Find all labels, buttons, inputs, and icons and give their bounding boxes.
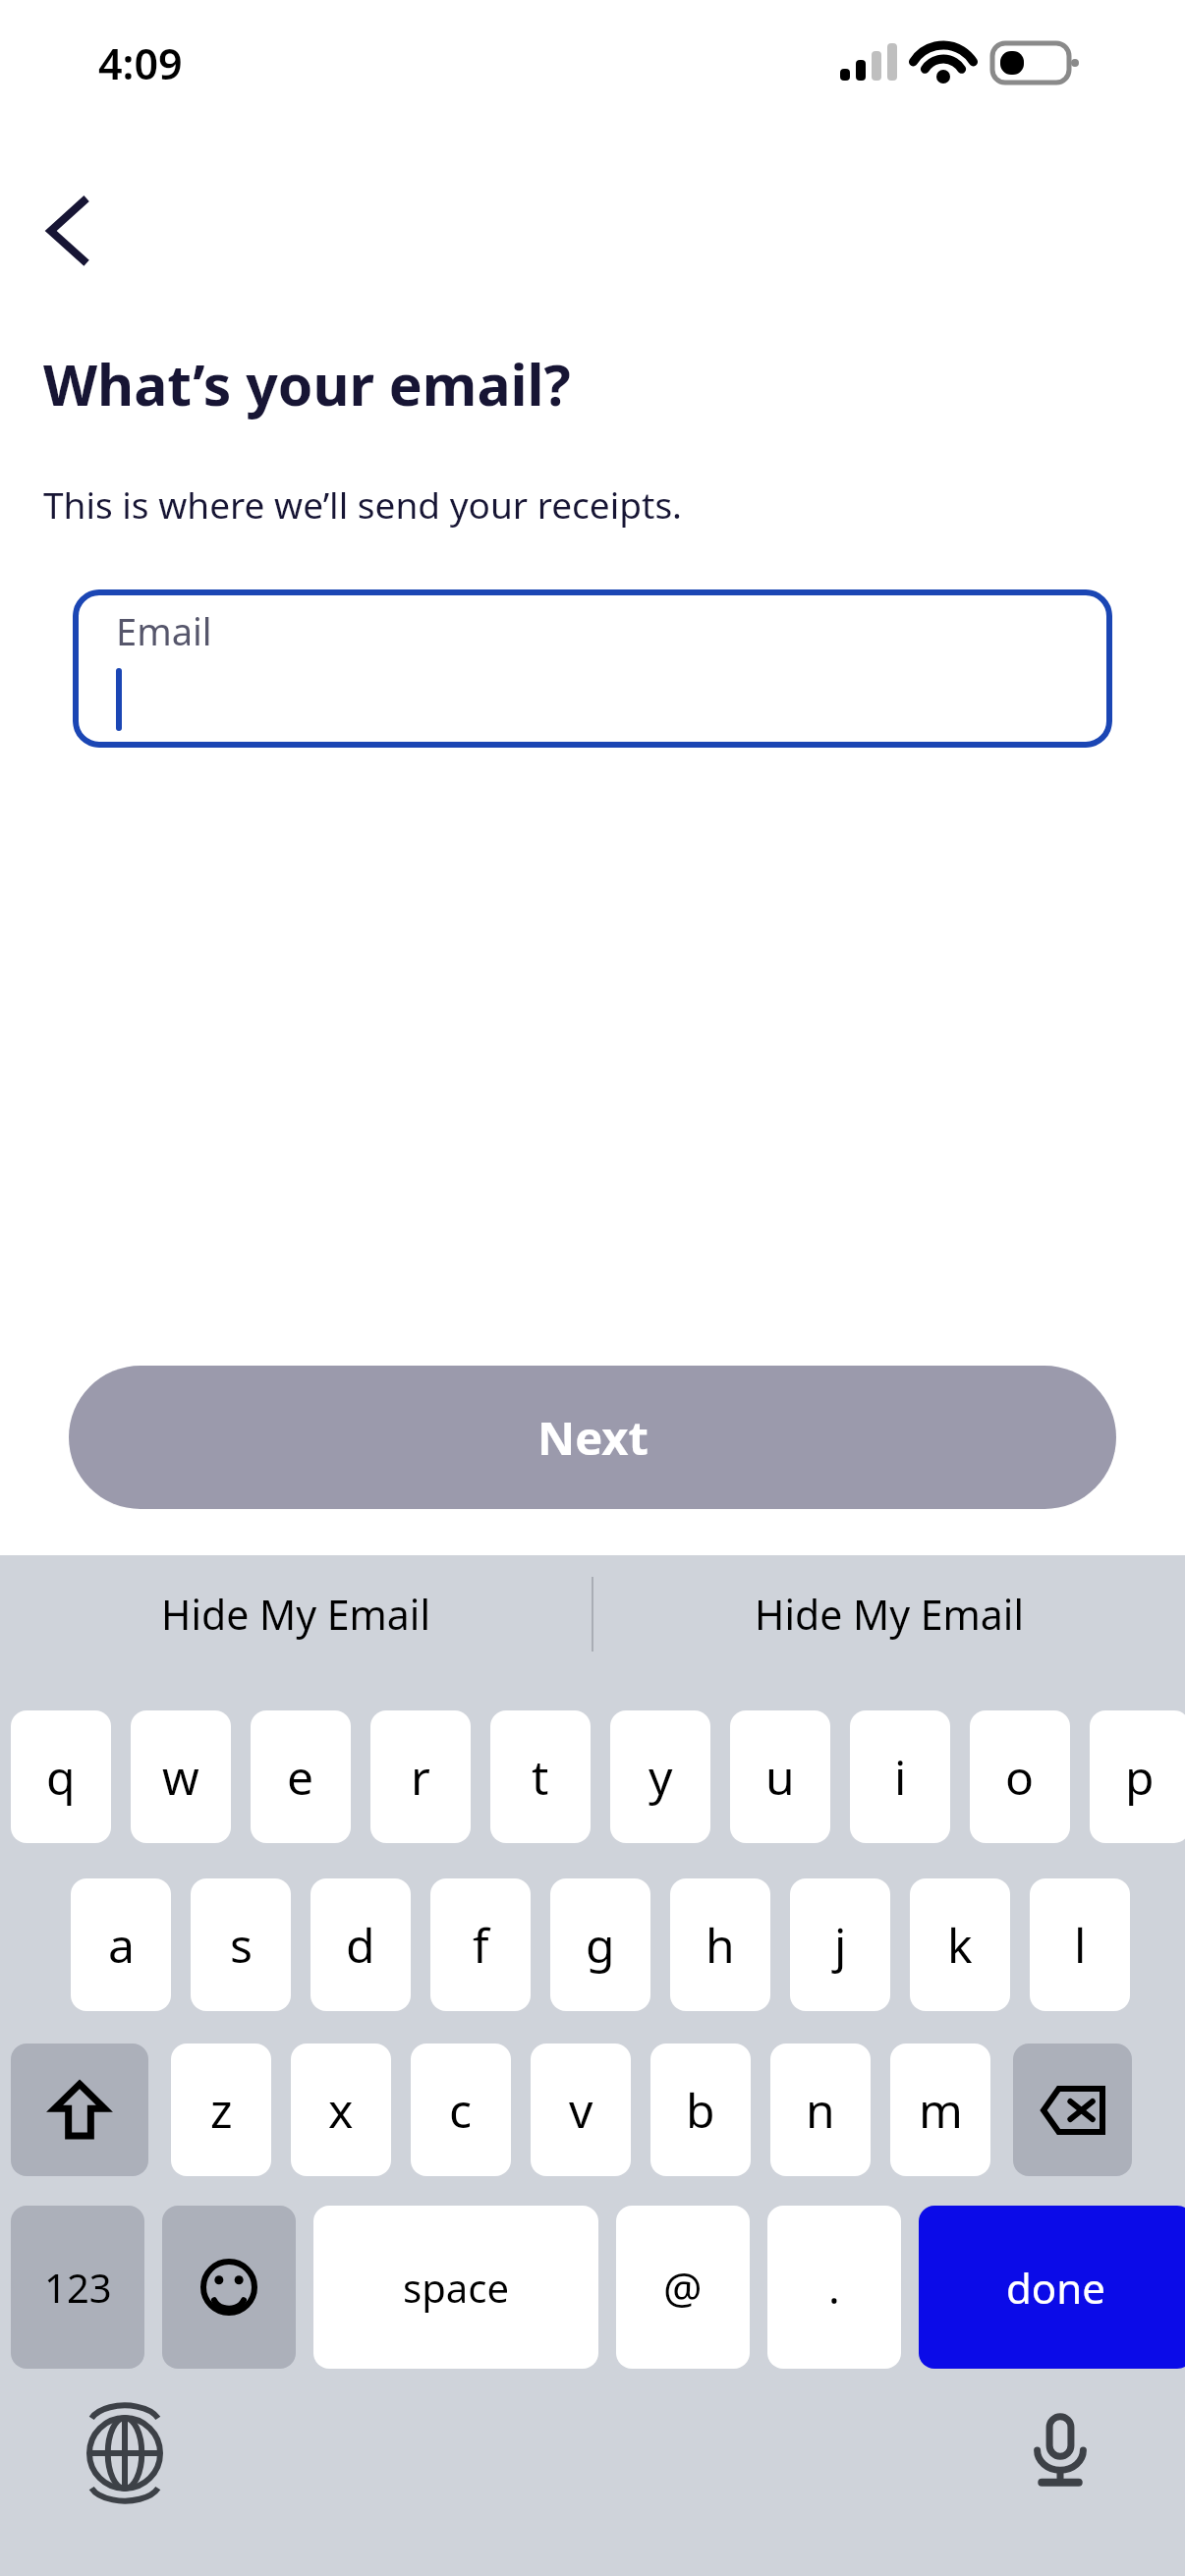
staticText: e [287, 1745, 314, 1809]
button[interactable]: Hide My Email [593, 1555, 1185, 1673]
staticText: y [649, 1745, 673, 1809]
staticText: Hide My Email [755, 1587, 1025, 1642]
button[interactable]: f [430, 1878, 531, 2011]
button[interactable]: a [71, 1878, 171, 2011]
button[interactable]: Shift [11, 2044, 148, 2176]
staticText: v [569, 2078, 593, 2142]
staticText: d [346, 1913, 375, 1977]
staticText: k [947, 1913, 973, 1977]
staticText: Email [116, 605, 212, 656]
button[interactable]: m [890, 2044, 990, 2176]
button[interactable]: d [310, 1878, 411, 2011]
staticText: t [532, 1745, 549, 1809]
staticText: r [411, 1745, 430, 1809]
button[interactable]: . [767, 2206, 901, 2369]
button[interactable]: Backspace [1013, 2044, 1132, 2176]
staticText: j [834, 1913, 847, 1977]
staticText: c [449, 2078, 473, 2142]
button[interactable]: o [970, 1710, 1070, 1843]
staticText: a [108, 1913, 135, 1977]
button[interactable]: 123 [11, 2206, 144, 2369]
staticText: This is where we’ll send your receipts. [43, 479, 683, 529]
staticText: h [705, 1913, 735, 1977]
button[interactable]: l [1030, 1878, 1130, 2011]
staticText: l [1074, 1913, 1087, 1977]
button[interactable]: n [770, 2044, 871, 2176]
staticText: Next [537, 1406, 649, 1469]
button[interactable]: q [11, 1710, 111, 1843]
button[interactable]: j [790, 1878, 890, 2011]
staticText: s [230, 1913, 253, 1977]
staticText: . [828, 2258, 840, 2317]
button[interactable]: b [650, 2044, 751, 2176]
staticText: x [328, 2078, 354, 2142]
staticText: 4:09 [98, 34, 183, 92]
staticText: w [162, 1745, 199, 1809]
button[interactable]: y [610, 1710, 710, 1843]
button[interactable]: h [670, 1878, 770, 2011]
button[interactable]: t [490, 1710, 591, 1843]
button[interactable]: i [850, 1710, 950, 1843]
button[interactable]: space [313, 2206, 598, 2369]
button[interactable]: e [251, 1710, 351, 1843]
staticText: 123 [44, 2261, 112, 2314]
button[interactable]: Emoji [162, 2206, 296, 2369]
staticText: space [403, 2261, 509, 2314]
staticText: g [586, 1913, 615, 1977]
button[interactable]: p [1090, 1710, 1185, 1843]
button[interactable]: g [550, 1878, 650, 2011]
staticText: u [765, 1745, 795, 1809]
button[interactable]: s [191, 1878, 291, 2011]
button[interactable]: v [531, 2044, 631, 2176]
button[interactable]: r [370, 1710, 471, 1843]
staticText: What’s your email? [43, 346, 571, 422]
staticText: q [46, 1745, 76, 1809]
staticText: n [806, 2078, 835, 2142]
staticText: @ [663, 2258, 703, 2317]
button[interactable]: Back [16, 179, 122, 285]
staticText: p [1125, 1745, 1155, 1809]
button[interactable]: z [171, 2044, 271, 2176]
button[interactable]: w [131, 1710, 231, 1843]
staticText: m [919, 2078, 963, 2142]
button[interactable]: Email [73, 589, 1112, 748]
button[interactable]: Next [69, 1366, 1116, 1509]
staticText: Hide My Email [161, 1587, 431, 1642]
staticText: done [1006, 2260, 1105, 2316]
staticText: b [686, 2078, 715, 2142]
staticText: z [210, 2078, 233, 2142]
button[interactable]: Dictation [1022, 2412, 1099, 2489]
button[interactable]: x [291, 2044, 391, 2176]
staticText: o [1005, 1745, 1035, 1809]
button[interactable]: done [919, 2206, 1185, 2369]
staticText: f [473, 1913, 489, 1977]
button[interactable]: Hide My Email [0, 1555, 592, 1673]
button[interactable]: k [910, 1878, 1010, 2011]
staticText: i [894, 1745, 907, 1809]
button[interactable]: Change keyboard language [86, 2415, 163, 2492]
button[interactable]: c [411, 2044, 511, 2176]
button[interactable]: u [730, 1710, 830, 1843]
button[interactable]: @ [616, 2206, 750, 2369]
